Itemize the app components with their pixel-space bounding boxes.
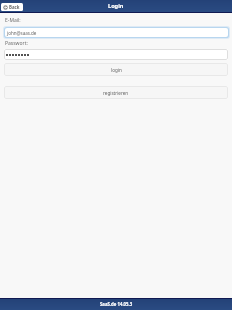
- button[interactable]: registrieren: [4, 86, 228, 99]
- staticText: Passwort:: [5, 40, 28, 47]
- staticText: login: [111, 67, 122, 73]
- staticText: Login: [108, 2, 124, 10]
- button[interactable]: login: [4, 63, 228, 76]
- button[interactable]: Back: [1, 3, 23, 11]
- staticText: john@saas.de: [7, 30, 37, 36]
- other: Back: [3, 5, 8, 10]
- staticText: registrieren: [103, 90, 129, 96]
- button[interactable]: [4, 49, 228, 60]
- button[interactable]: john@saas.de: [3, 26, 230, 39]
- staticText: E-Mail:: [5, 17, 21, 24]
- staticText: SaaS.de 14.05.3: [100, 301, 133, 307]
- staticText: Back: [9, 4, 20, 10]
